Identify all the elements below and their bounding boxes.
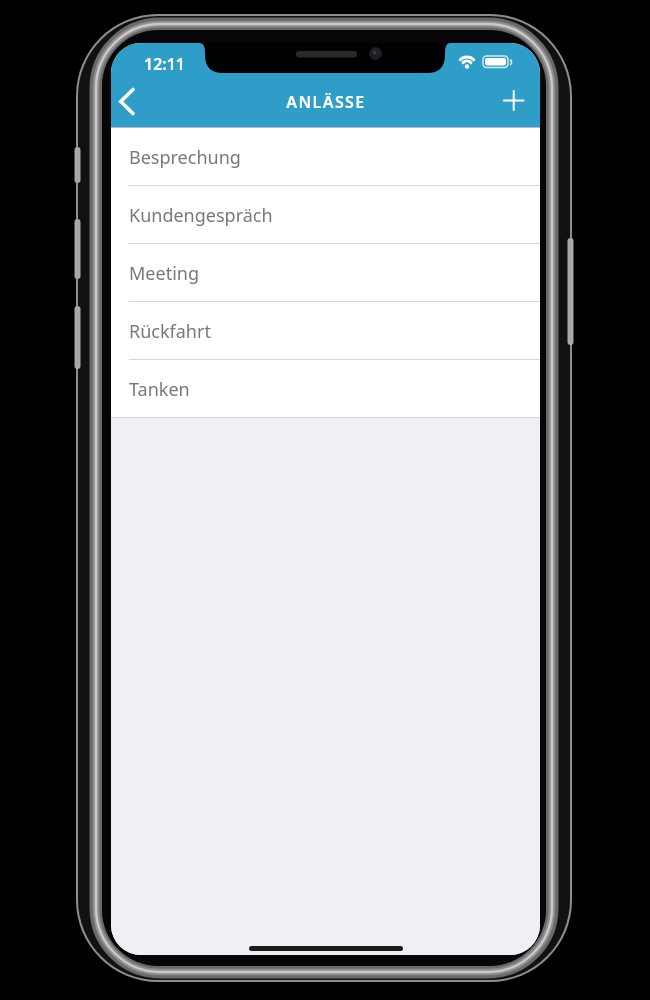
button[interactable]: Rückfahrt xyxy=(111,302,540,360)
staticText: 12:11 xyxy=(144,53,186,75)
staticText: Besprechung xyxy=(129,145,241,170)
staticText: ANLÄSSE xyxy=(286,91,366,113)
button[interactable]: Tanken xyxy=(111,360,540,418)
staticText: Kundengespräch xyxy=(129,203,273,228)
staticText: Tanken xyxy=(129,377,190,402)
button[interactable]: Besprechung xyxy=(111,128,540,186)
staticText: Rückfahrt xyxy=(129,319,211,344)
button[interactable]: Meeting xyxy=(111,244,540,302)
staticText: Meeting xyxy=(129,261,199,286)
button[interactable] xyxy=(494,81,534,121)
button[interactable] xyxy=(111,81,151,121)
button[interactable]: Kundengespräch xyxy=(111,186,540,244)
